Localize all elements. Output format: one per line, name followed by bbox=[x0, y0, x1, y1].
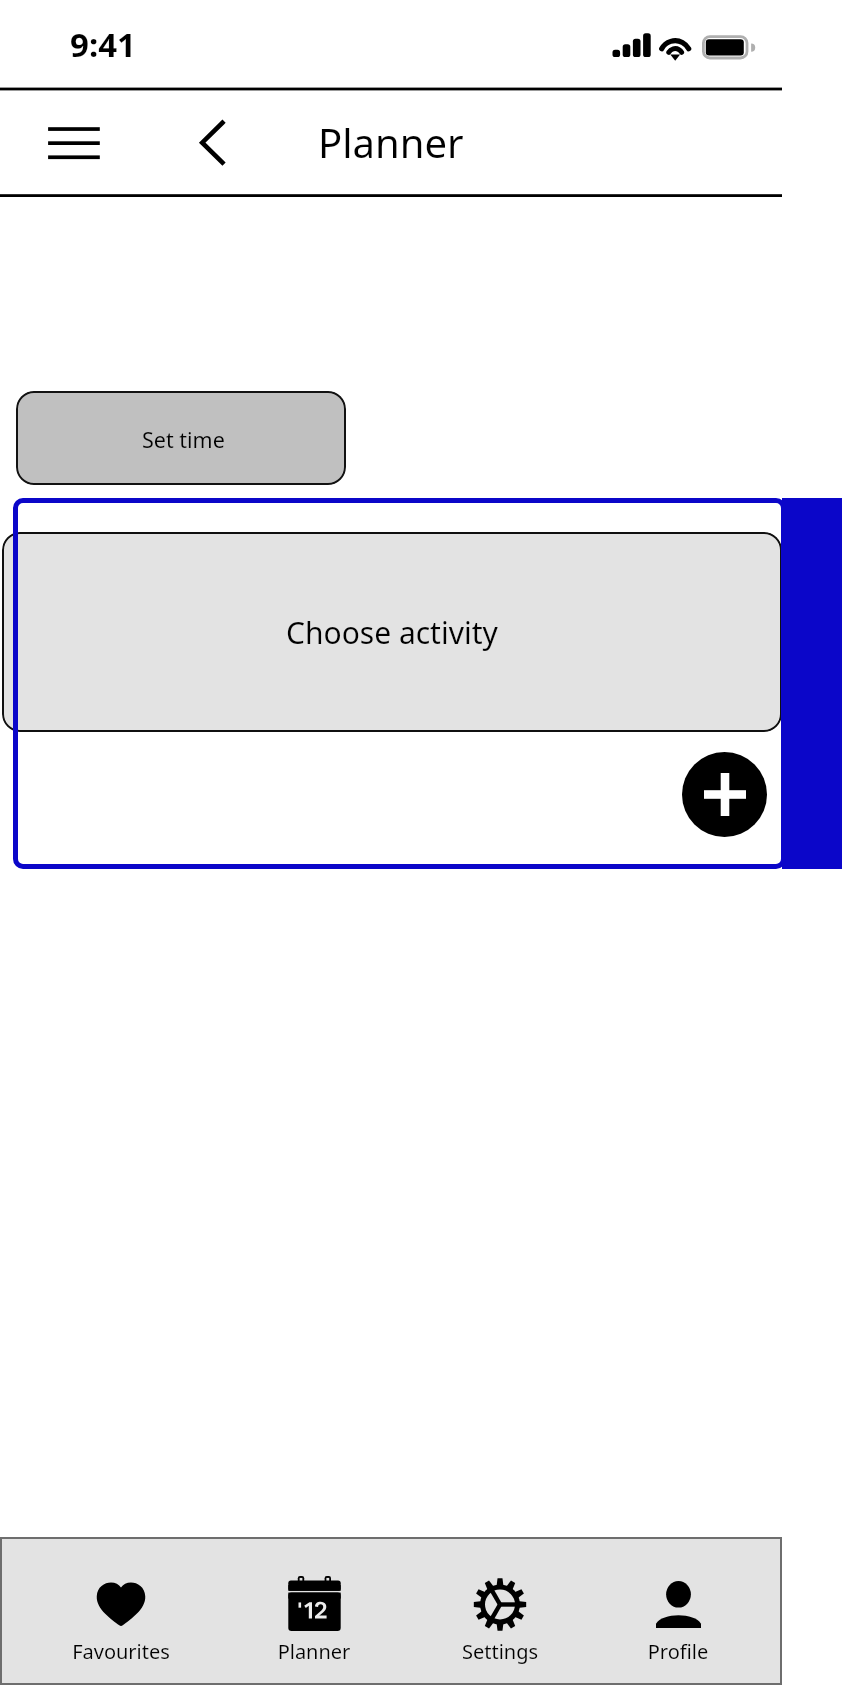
button[interactable]: Planner bbox=[236, 1546, 392, 1676]
staticText: Favourites bbox=[71, 1638, 171, 1665]
button[interactable]: Back bbox=[180, 108, 246, 178]
button[interactable]: Menu bbox=[30, 108, 118, 178]
staticText: Planner bbox=[274, 1638, 354, 1665]
staticText: Planner bbox=[318, 115, 464, 169]
button[interactable]: Profile bbox=[600, 1546, 756, 1676]
button[interactable]: Choose activity bbox=[2, 532, 782, 732]
staticText: 9:41 bbox=[70, 22, 136, 67]
button[interactable]: Set time bbox=[16, 391, 346, 485]
button[interactable]: Favourites bbox=[43, 1546, 199, 1676]
button[interactable]: Add bbox=[682, 752, 767, 837]
staticText: Profile bbox=[643, 1638, 713, 1665]
staticText: Set time bbox=[142, 425, 225, 454]
staticText: Choose activity bbox=[286, 612, 498, 653]
staticText: Settings bbox=[458, 1638, 542, 1665]
button[interactable]: Settings bbox=[422, 1546, 578, 1676]
